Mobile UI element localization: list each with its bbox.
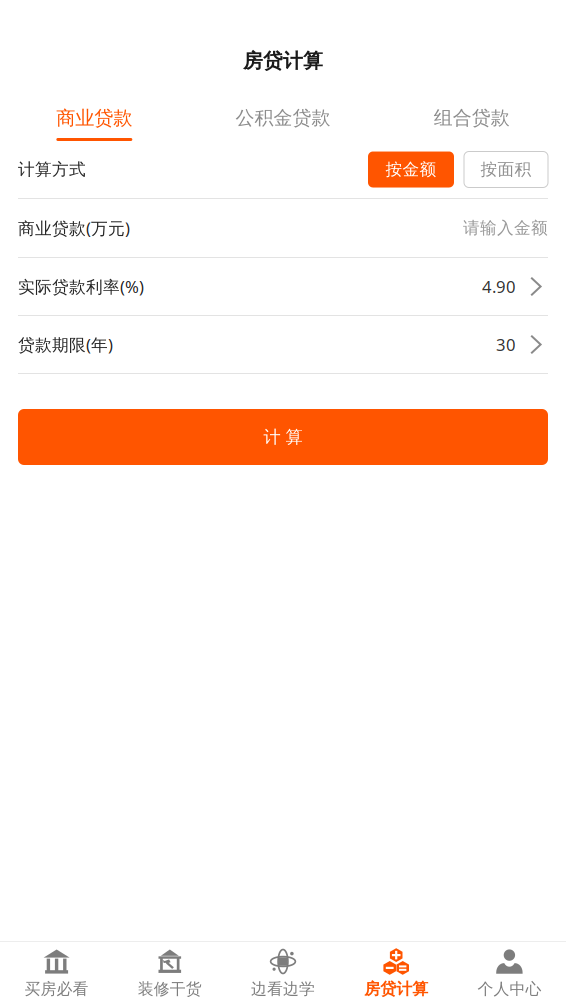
staticText: 公积金贷款 [235,106,330,130]
button[interactable]: 房贷计算 [340,942,453,1006]
button[interactable]: 贷款期限(年) [18,316,548,373]
button[interactable]: 个人中心 [453,942,566,1006]
button[interactable]: 按金额 [368,151,454,187]
staticText: 按金额 [385,159,436,180]
staticText: 贷款期限(年) [18,333,113,356]
button[interactable]: 装修干货 [113,942,226,1006]
staticText: 房贷计算 [364,979,428,999]
staticText: 请输入金额 [463,217,548,238]
button[interactable]: 按面积 [464,151,548,187]
button[interactable]: 公积金贷款 [189,92,377,141]
staticText: 实际贷款利率(%) [18,275,144,298]
staticText: 个人中心 [477,979,541,999]
staticText: 计算方式 [18,159,86,180]
staticText: 房贷计算 [243,49,323,73]
staticText: 计 算 [263,426,302,448]
staticText: 买房必看 [25,979,89,999]
button[interactable]: 组合贷款 [377,92,566,141]
button[interactable]: 边看边学 [226,942,340,1006]
staticText: 商业贷款(万元) [18,217,130,239]
staticText: 组合贷款 [434,106,510,130]
staticText: 边看边学 [251,979,315,999]
staticText: 30 [496,333,516,356]
staticText: 装修干货 [138,979,202,999]
staticText: 商业贷款 [56,106,132,130]
button[interactable]: 实际贷款利率(%) [18,258,548,315]
button[interactable]: 商业贷款 [0,92,189,141]
staticText: 按面积 [480,159,531,180]
staticText: 4.90 [482,275,516,298]
button[interactable]: 计 算 [18,409,548,465]
button[interactable]: 买房必看 [0,942,113,1006]
